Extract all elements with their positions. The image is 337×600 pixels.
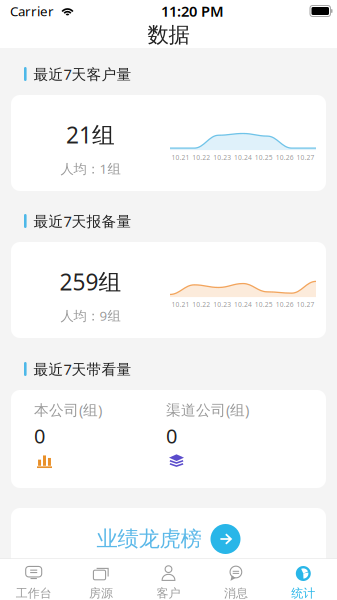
staticText: 10.22 [192,300,210,309]
staticText: 21组 [66,120,115,150]
staticText: 消息 [224,586,248,600]
staticText: 房源 [89,586,113,600]
staticText: 工作台 [16,586,52,600]
staticText: 人均：9组 [60,307,120,324]
staticText: 统计 [291,586,315,600]
staticText: 10.24 [234,300,252,309]
staticText: 10.24 [234,153,252,162]
staticText: 10.21 [171,300,189,309]
staticText: 10.21 [171,153,189,162]
button[interactable]: 工作台 [0,559,67,600]
staticText: 最近7天报备量 [34,211,132,231]
staticText: 10.22 [192,153,210,162]
staticText: 本公司(组) [34,400,102,419]
staticText: 10.26 [276,153,294,162]
button[interactable]: 消息 [202,559,270,600]
staticText: 数据 [147,22,189,48]
staticText: 10.27 [297,153,315,162]
button[interactable]: 客户 [135,559,202,600]
button[interactable]: 统计 [270,559,337,600]
staticText: 人均：1组 [60,160,120,177]
staticText: 11:20 PM [161,1,224,21]
staticText: 259组 [59,267,121,297]
staticText: 10.27 [297,300,315,309]
staticText: 0 [34,422,45,449]
staticText: 10.23 [213,153,231,162]
staticText: 最近7天客户量 [34,64,132,84]
staticText: 渠道公司(组) [166,400,249,419]
staticText: 0 [166,422,177,449]
staticText: 10.25 [255,300,273,309]
staticText: 10.26 [276,300,294,309]
button[interactable]: 业绩龙虎榜 [0,488,337,570]
staticText: Carrier [10,2,54,20]
staticText: 客户 [156,586,180,600]
button[interactable]: 房源 [67,559,135,600]
staticText: 最近7天带看量 [34,359,132,379]
staticText: 10.23 [213,300,231,309]
staticText: 业绩龙虎榜 [96,526,201,552]
staticText: 10.25 [255,153,273,162]
